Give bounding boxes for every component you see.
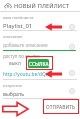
button[interactable]: Info [69, 24, 75, 30]
staticText: описание [3, 34, 23, 40]
staticText: открытие [3, 83, 23, 89]
staticText: выбрать [3, 90, 25, 97]
staticText: выкл [9, 60, 21, 67]
staticText: добавьте описание [3, 42, 48, 49]
button[interactable]: Upload [3, 1, 12, 10]
staticText: ССЫЛКА [29, 61, 49, 67]
staticText: доступ по ссылке [3, 53, 40, 59]
staticText: Playlist_01 [3, 22, 33, 30]
button[interactable]: ОТПРАВИТЬ [45, 102, 77, 113]
button[interactable]: Info [69, 88, 75, 94]
staticText: НОВЫЙ ПЛЕЙЛИСТ [14, 2, 70, 10]
button[interactable]: ССЫЛКА [28, 59, 49, 68]
staticText: http://youtu.be/dQw [3, 71, 50, 78]
button[interactable]: Info [69, 70, 75, 76]
staticText: имя плейлиста [3, 15, 34, 21]
staticText: ОТПРАВИТЬ [46, 104, 76, 111]
button[interactable]: Info [69, 44, 75, 50]
